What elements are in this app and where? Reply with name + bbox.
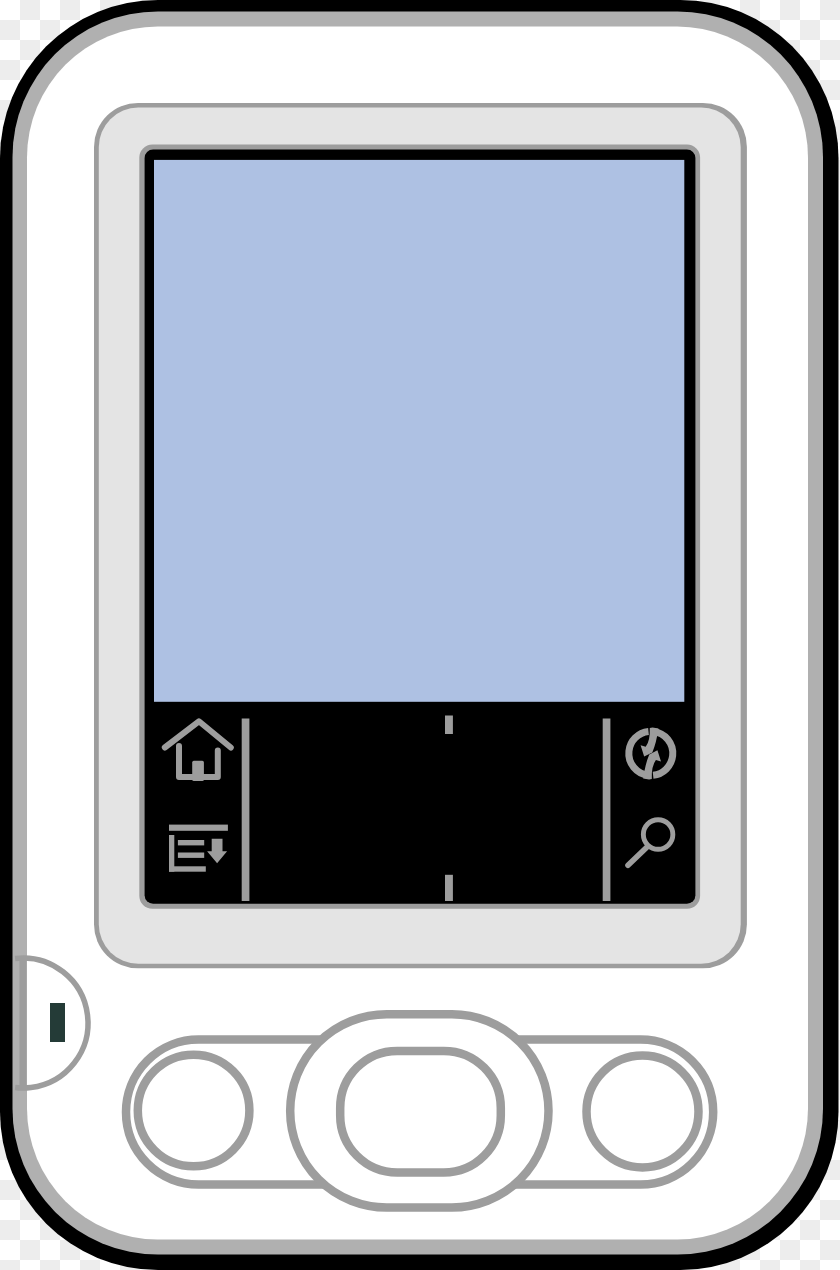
button[interactable]: To do list	[584, 1052, 702, 1170]
button[interactable]: Address book	[135, 1052, 253, 1170]
button[interactable]: Search	[612, 812, 696, 900]
button[interactable]: Menu	[150, 812, 242, 900]
button[interactable]: Scroll up and down	[288, 1012, 551, 1210]
button[interactable]: Graffiti writing area	[434, 710, 464, 900]
button[interactable]: Home	[150, 710, 242, 800]
button[interactable]: HotSync	[612, 710, 696, 800]
